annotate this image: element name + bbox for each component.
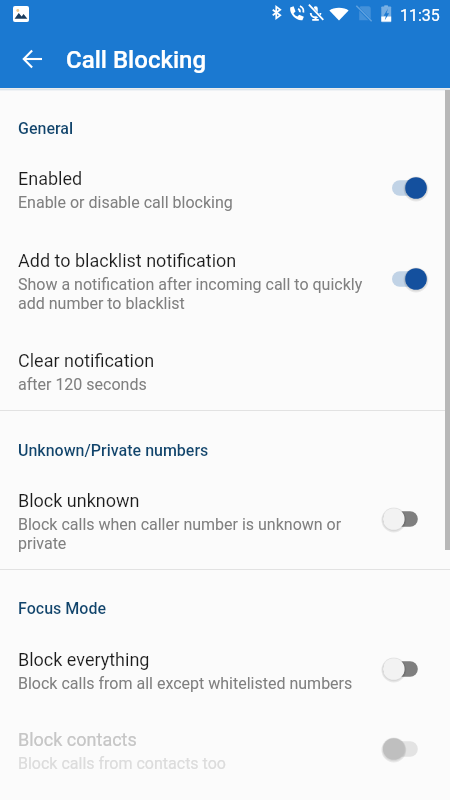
button[interactable]: Navigate up [6, 33, 58, 85]
staticText: Add to blacklist notification [18, 250, 237, 271]
staticText: Block everything [18, 649, 150, 670]
button[interactable]: Clear notification [0, 337, 450, 403]
button[interactable]: Add to blacklist notification [0, 237, 450, 321]
button[interactable]: Block unknown [0, 477, 450, 561]
button[interactable]: Switch off [380, 654, 421, 684]
staticText: Block unknown [18, 490, 140, 511]
staticText: General [18, 119, 74, 138]
staticText: Clear notification [18, 350, 155, 371]
button[interactable]: Switch on [389, 264, 430, 294]
staticText: Call Blocking [66, 46, 207, 74]
button[interactable]: Block everything [0, 636, 450, 702]
staticText: after 120 seconds [18, 375, 380, 394]
staticText: Enable or disable call blocking [18, 193, 380, 212]
staticText: Block calls from all except whitelisted … [18, 674, 380, 693]
button[interactable]: Switch off [380, 504, 421, 534]
button[interactable]: Switch off [380, 734, 421, 764]
staticText: Enabled [18, 168, 83, 189]
staticText: Focus Mode [18, 599, 107, 618]
button[interactable]: Block contacts [0, 716, 450, 782]
button[interactable]: Enabled [0, 155, 450, 221]
staticText: Block calls from contacts too [18, 754, 380, 773]
staticText: Block contacts [18, 729, 137, 750]
staticText: Show a notification after incoming call … [18, 275, 380, 313]
staticText: Unknown/Private numbers [18, 441, 209, 460]
staticText: 11:35 [400, 6, 440, 25]
staticText: Block calls when caller number is unknow… [18, 515, 380, 553]
button[interactable]: Switch on [389, 173, 430, 203]
